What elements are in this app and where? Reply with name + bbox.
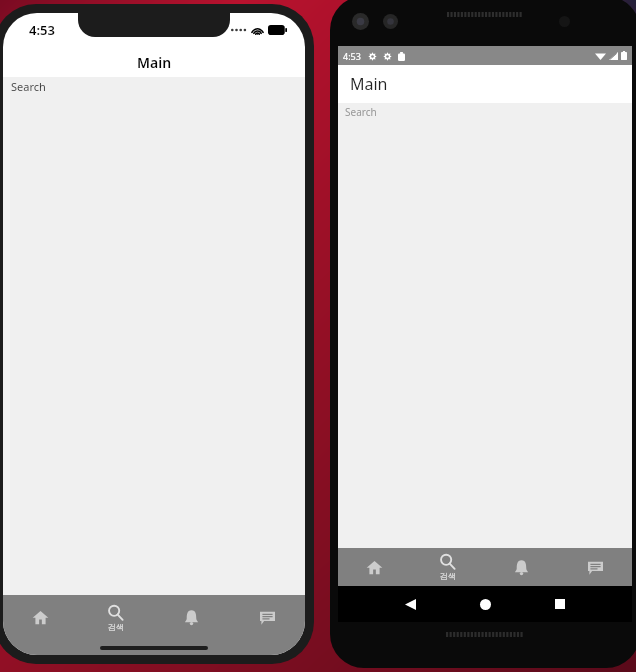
button[interactable]: Notifications: [153, 595, 229, 640]
staticText: Main: [350, 73, 388, 95]
button[interactable]: Home: [468, 587, 502, 621]
button[interactable]: Home: [338, 548, 411, 586]
staticText: 검색: [440, 571, 456, 581]
button[interactable]: Messages: [558, 548, 632, 586]
button[interactable]: 검색: [411, 548, 484, 586]
staticText: Search: [345, 105, 377, 119]
button[interactable]: Notifications: [484, 548, 558, 586]
staticText: 4:53: [29, 21, 55, 39]
staticText: Main: [137, 53, 172, 72]
button[interactable]: Home: [3, 595, 78, 640]
button[interactable]: Messages: [229, 595, 305, 640]
staticText: Search: [11, 79, 46, 94]
staticText: 검색: [108, 622, 124, 632]
button[interactable]: Recent apps: [543, 587, 577, 621]
button[interactable]: 검색: [78, 595, 153, 640]
staticText: 4:53: [343, 50, 361, 62]
button[interactable]: Back: [393, 587, 427, 621]
